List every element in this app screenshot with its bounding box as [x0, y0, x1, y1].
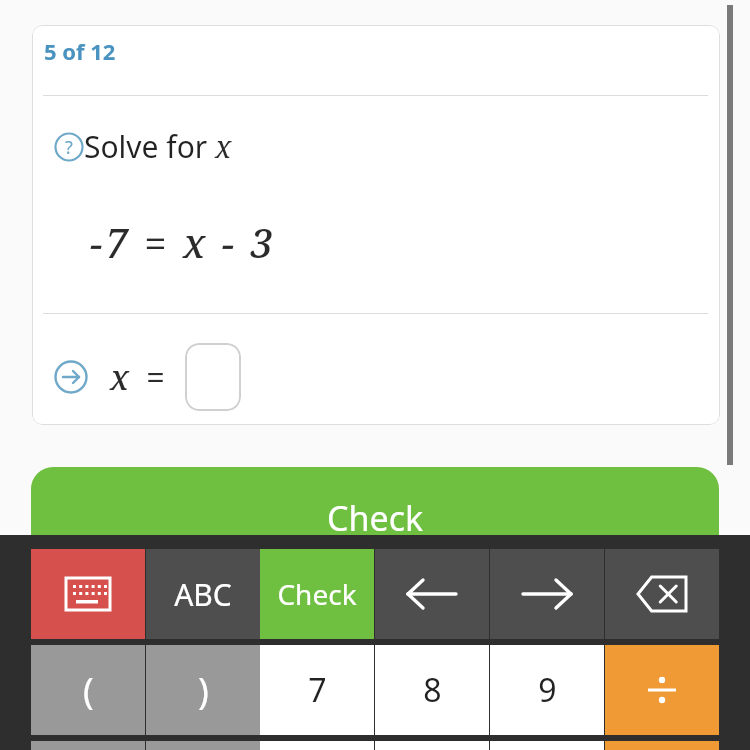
staticText: 8 — [423, 668, 442, 712]
staticText: Check — [327, 495, 424, 541]
button[interactable]: Right — [490, 549, 604, 639]
button[interactable]: Check — [260, 549, 374, 639]
staticText: 7 — [308, 668, 327, 712]
button[interactable]: 8 — [375, 645, 489, 735]
staticText: −7 = x − 3 — [90, 215, 276, 269]
staticText: ? — [65, 135, 73, 160]
button[interactable]: ( — [31, 645, 145, 735]
button[interactable]: Left — [375, 549, 489, 639]
button[interactable]: Help — [54, 132, 84, 162]
staticText: 5 of 12 — [44, 36, 116, 66]
staticText: ) — [198, 666, 209, 715]
staticText: x = — [110, 354, 169, 400]
button[interactable]: 7 — [260, 645, 374, 735]
staticText: x — [215, 126, 232, 167]
button[interactable]: Answer input — [185, 343, 241, 411]
button[interactable]: Backspace — [605, 549, 719, 639]
button[interactable]: 9 — [490, 645, 604, 735]
button[interactable]: ABC — [146, 549, 260, 639]
button[interactable]: Check — [31, 467, 719, 557]
button[interactable]: Submit answer — [54, 360, 88, 394]
button[interactable]: Divide — [605, 645, 719, 735]
staticText: ABC — [174, 574, 232, 615]
staticText: 9 — [538, 668, 557, 712]
staticText: Solve for — [84, 126, 215, 167]
staticText: Check — [277, 575, 357, 613]
staticText: ( — [83, 666, 94, 715]
button[interactable]: ) — [146, 645, 260, 735]
button[interactable]: Hide keyboard — [31, 549, 145, 639]
